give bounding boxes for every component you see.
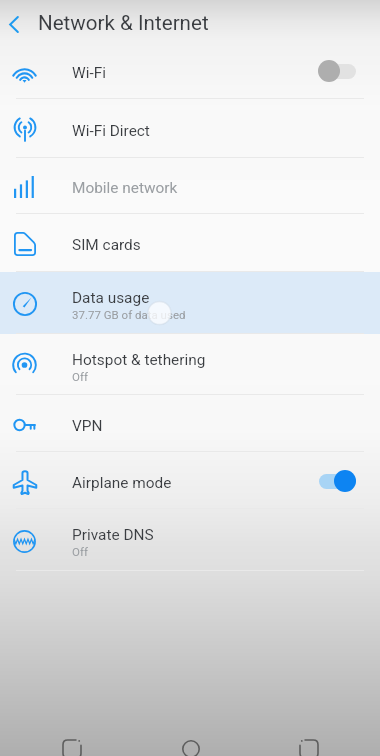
staticText: Wi-Fi Direct	[72, 122, 150, 140]
staticText: VPN	[72, 417, 103, 435]
staticText: Off	[72, 545, 88, 558]
button[interactable]: Wi-Fi	[0, 42, 380, 99]
button[interactable]: Recent apps	[24, 720, 119, 756]
staticText: 37.77 GB of data used	[72, 308, 186, 321]
button[interactable]: Airplane mode	[0, 452, 380, 509]
staticText: Airplane mode	[72, 474, 172, 492]
button[interactable]: Data usage	[0, 272, 380, 334]
staticText: Hotspot & tethering	[72, 351, 206, 369]
button[interactable]: Mobile network	[0, 158, 380, 214]
button[interactable]: Turn on	[314, 57, 360, 85]
button[interactable]: Home	[143, 720, 238, 756]
staticText: Private DNS	[72, 526, 154, 544]
staticText: Data usage	[72, 289, 150, 307]
button[interactable]: Hotspot & tethering	[0, 334, 380, 395]
button[interactable]: SIM cards	[0, 214, 380, 272]
staticText: Mobile network	[72, 179, 178, 197]
button[interactable]: Back	[0, 3, 33, 45]
button[interactable]: Turn off	[314, 467, 360, 495]
staticText: SIM cards	[72, 236, 141, 254]
button[interactable]: Back	[261, 720, 356, 756]
staticText: Wi-Fi	[72, 64, 106, 82]
button[interactable]: Wi-Fi Direct	[0, 99, 380, 158]
button[interactable]: Private DNS	[0, 509, 380, 571]
staticText: Off	[72, 370, 88, 383]
button[interactable]: VPN	[0, 395, 380, 452]
staticText: Network & Internet	[38, 11, 209, 35]
